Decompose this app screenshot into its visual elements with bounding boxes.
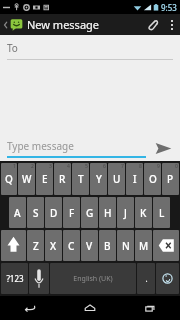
staticText: R xyxy=(59,172,66,186)
button[interactable]: G xyxy=(81,197,98,228)
button[interactable]: ?123 xyxy=(1,263,28,294)
staticText: New message xyxy=(27,17,100,32)
staticText: Type message xyxy=(7,139,74,153)
button[interactable]: L xyxy=(153,197,170,228)
button[interactable]: Backspace xyxy=(153,230,179,261)
button[interactable]: Z xyxy=(27,230,44,261)
staticText: E xyxy=(42,172,48,186)
button[interactable]: S xyxy=(27,197,44,228)
button[interactable]: H xyxy=(99,197,116,228)
button[interactable]: K xyxy=(135,197,152,228)
button[interactable]: English (UK) xyxy=(50,263,136,294)
staticText: X xyxy=(50,239,57,253)
staticText: 0 xyxy=(175,163,178,170)
staticText: N xyxy=(122,239,130,253)
button[interactable]: F xyxy=(63,197,80,228)
button[interactable]: N xyxy=(117,230,134,261)
button[interactable]: X xyxy=(45,230,62,261)
staticText: B xyxy=(104,239,111,253)
staticText: P xyxy=(167,172,174,186)
staticText: M xyxy=(139,239,149,253)
button[interactable]: Back xyxy=(0,17,104,32)
button[interactable]: Type message xyxy=(7,139,146,158)
staticText: . xyxy=(145,273,148,284)
staticText: V xyxy=(86,239,93,253)
staticText: A xyxy=(14,206,21,220)
staticText: Q xyxy=(5,172,13,186)
staticText: K xyxy=(140,206,147,220)
staticText: O xyxy=(149,172,157,186)
staticText: J xyxy=(124,206,127,220)
staticText: G xyxy=(86,206,94,220)
staticText: 7 xyxy=(121,163,124,170)
button[interactable]: P xyxy=(162,163,179,195)
button[interactable]: . xyxy=(137,263,155,294)
button[interactable]: U xyxy=(108,163,125,195)
staticText: 4 xyxy=(67,163,70,170)
button[interactable]: Attach xyxy=(140,14,164,35)
staticText: H xyxy=(104,206,112,220)
button[interactable]: Back xyxy=(0,296,60,320)
button[interactable]: O xyxy=(144,163,161,195)
staticText: 6 xyxy=(103,163,106,170)
staticText: 9:53 xyxy=(161,2,177,13)
button[interactable]: Recents xyxy=(120,296,180,320)
button[interactable]: C xyxy=(63,230,80,261)
button[interactable]: A xyxy=(9,197,26,228)
staticText: 9 xyxy=(157,163,160,170)
staticText: W xyxy=(22,172,32,186)
button[interactable]: Shift xyxy=(1,230,26,261)
button[interactable]: Emoji xyxy=(156,263,179,294)
staticText: 5 xyxy=(85,163,88,170)
staticText: 1 xyxy=(13,163,16,170)
button[interactable]: V xyxy=(81,230,98,261)
button[interactable]: W xyxy=(18,163,35,195)
staticText: I xyxy=(133,172,137,186)
staticText: Y xyxy=(96,172,102,186)
button[interactable]: I xyxy=(126,163,143,195)
staticText: English (UK) xyxy=(73,274,113,284)
staticText: Z xyxy=(33,239,39,253)
button[interactable]: Y xyxy=(90,163,107,195)
button[interactable]: Send xyxy=(152,138,174,158)
staticText: To xyxy=(7,41,18,55)
button[interactable]: R xyxy=(54,163,71,195)
staticText: T xyxy=(78,172,84,186)
staticText: C xyxy=(68,239,75,253)
staticText: L xyxy=(159,206,165,220)
button[interactable]: T xyxy=(72,163,89,195)
staticText: 3 xyxy=(49,163,52,170)
button[interactable]: More options xyxy=(164,14,180,35)
staticText: 8 xyxy=(139,163,142,170)
button[interactable]: Home xyxy=(60,296,120,320)
button[interactable]: B xyxy=(99,230,116,261)
staticText: 2 xyxy=(31,163,34,170)
staticText: ?123 xyxy=(6,273,24,284)
other: Back xyxy=(3,20,8,30)
button[interactable]: D xyxy=(45,197,62,228)
staticText: S xyxy=(33,206,39,220)
staticText: F xyxy=(69,206,75,220)
button[interactable]: E xyxy=(36,163,53,195)
button[interactable]: Voice input xyxy=(29,263,49,294)
button[interactable]: J xyxy=(117,197,134,228)
button[interactable]: Q xyxy=(1,163,17,195)
button[interactable]: M xyxy=(135,230,152,261)
staticText: U xyxy=(113,172,121,186)
staticText: D xyxy=(50,206,58,220)
